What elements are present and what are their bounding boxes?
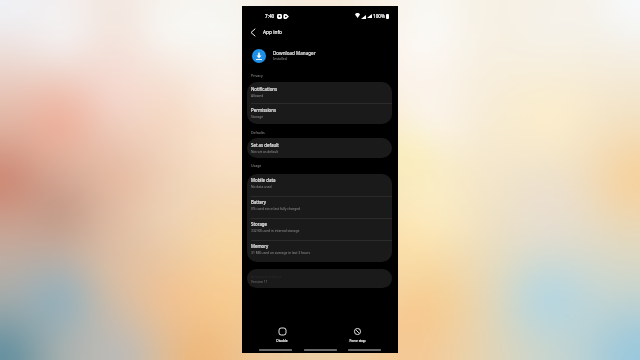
staticText: Not set as default (251, 149, 279, 153)
staticText: Permissions (251, 107, 276, 113)
staticText: Memory (251, 243, 269, 249)
button[interactable]: Force stop (335, 320, 379, 342)
button[interactable]: Disable (260, 320, 304, 342)
button[interactable]: Set as default (247, 138, 392, 158)
staticText: Storage (251, 114, 264, 118)
staticText: App info (263, 29, 282, 36)
staticText: Set as default (251, 142, 279, 148)
staticText: No data used (251, 184, 272, 188)
staticText: 7:40 (265, 13, 275, 19)
button[interactable]: Advanced settings (247, 269, 392, 288)
staticText: Allowed (251, 93, 264, 97)
staticText: Installed (273, 56, 287, 61)
staticText: Mobile data (251, 177, 276, 183)
staticText: Storage (251, 221, 268, 227)
button[interactable]: Mobile data (247, 174, 392, 196)
button[interactable]: Battery (247, 196, 392, 218)
button[interactable]: Notifications (247, 82, 392, 103)
staticText: 0% used since last fully charged (251, 206, 301, 210)
staticText: Notifications (251, 86, 278, 92)
staticText: Download Manager (273, 50, 316, 56)
button[interactable]: Memory (247, 240, 392, 262)
staticText: 332 KB used in internal storage (251, 228, 300, 232)
staticText: Usage (251, 163, 262, 168)
staticText: Battery (251, 199, 267, 205)
staticText: Privacy (251, 73, 263, 78)
staticText: Disable (276, 338, 288, 342)
staticText: Version 11 (251, 279, 268, 284)
button[interactable]: Storage (247, 218, 392, 240)
staticText: Defaults (251, 130, 265, 135)
button[interactable]: Permissions (247, 103, 392, 124)
staticText: 100% (373, 13, 385, 19)
staticText: 31 MB used on average in last 3 hours (251, 250, 310, 254)
button[interactable]: Back (246, 25, 260, 39)
staticText: Force stop (349, 338, 366, 342)
